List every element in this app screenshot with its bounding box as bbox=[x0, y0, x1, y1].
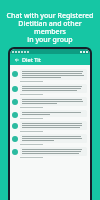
button[interactable] bbox=[10, 108, 90, 119]
button[interactable] bbox=[10, 145, 90, 158]
button[interactable] bbox=[10, 82, 90, 95]
staticText: Chat with your Registered Dietitian and … bbox=[6, 11, 94, 44]
button[interactable] bbox=[10, 95, 90, 108]
button[interactable] bbox=[10, 67, 90, 82]
button[interactable]: Back bbox=[13, 56, 20, 63]
staticText: Diet Tit bbox=[22, 56, 41, 63]
button[interactable] bbox=[10, 119, 90, 132]
button[interactable] bbox=[10, 132, 90, 145]
